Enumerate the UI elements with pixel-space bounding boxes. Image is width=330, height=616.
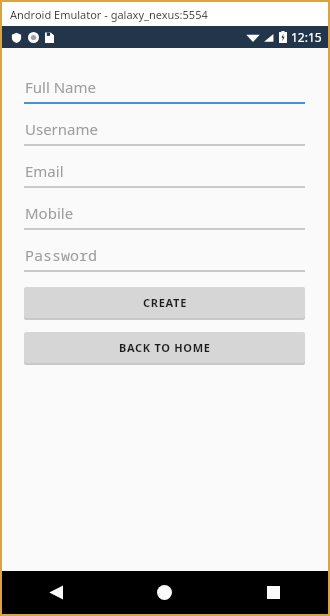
button[interactable]: Recent apps (219, 571, 328, 614)
staticText: Full Name (25, 77, 96, 97)
staticText: Password (25, 245, 98, 265)
staticText: Mobile (25, 203, 74, 223)
staticText: CREATE (143, 295, 187, 310)
button[interactable]: Back (2, 571, 110, 614)
button[interactable]: BACK TO HOME (24, 332, 305, 363)
button[interactable]: Full Name (24, 72, 305, 104)
button[interactable]: Username (24, 114, 305, 146)
staticText: Android Emulator - galaxy_nexus:5554 (10, 7, 208, 22)
button[interactable]: Mobile (24, 198, 305, 230)
staticText: Email (25, 161, 64, 181)
staticText: Username (25, 119, 98, 139)
button[interactable]: Home (110, 571, 219, 614)
button[interactable]: Password (24, 240, 305, 272)
button[interactable]: CREATE (24, 287, 305, 318)
staticText: 12:15 (291, 29, 322, 45)
button[interactable]: Email (24, 156, 305, 188)
staticText: BACK TO HOME (119, 340, 211, 355)
